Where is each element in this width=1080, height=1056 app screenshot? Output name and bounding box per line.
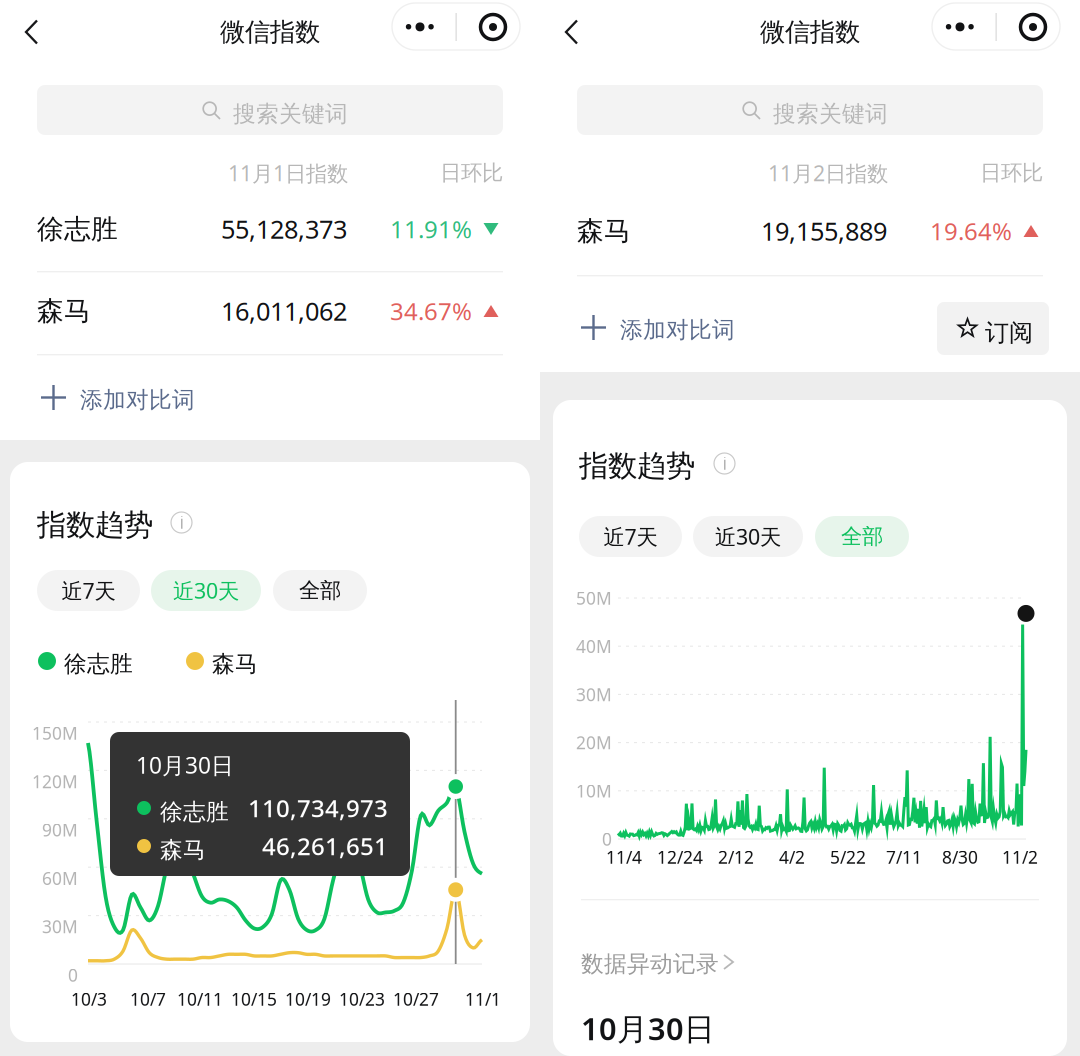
staticText: 森马 — [212, 650, 258, 678]
staticText: 日环比 — [440, 160, 503, 186]
staticText: 60M — [42, 867, 78, 890]
staticText: 订阅 — [985, 318, 1033, 347]
button[interactable]: Back — [5, 3, 57, 61]
staticText: 搜索关键词 — [773, 100, 888, 128]
staticText: 微信指数 — [760, 16, 860, 47]
button[interactable]: 数据异动记录 — [581, 944, 761, 978]
staticText: 徐志胜 — [37, 213, 118, 245]
button[interactable]: 添加对比词 — [37, 366, 503, 428]
staticText: 16,011,062 — [221, 294, 347, 328]
staticText: 10M — [576, 779, 612, 802]
button[interactable]: 订阅 — [937, 302, 1049, 355]
staticText: 0 — [602, 827, 612, 850]
staticText: 19.64% — [930, 215, 1012, 247]
staticText: 森马 — [160, 836, 206, 864]
staticText: 5/22 — [830, 845, 866, 868]
staticText: 近7天 — [603, 522, 657, 551]
staticText: 10月30日 — [581, 1008, 715, 1049]
staticText: 12/24 — [657, 845, 703, 868]
staticText: 110,734,973 — [248, 792, 388, 824]
button[interactable]: 近30天 — [151, 570, 261, 611]
staticText: 55,128,373 — [221, 212, 347, 246]
button[interactable]: 全部 — [273, 570, 367, 611]
staticText: 2/12 — [718, 845, 754, 868]
staticText: 7/11 — [886, 845, 922, 868]
staticText: 徐志胜 — [160, 798, 229, 826]
staticText: 10/19 — [285, 987, 331, 1010]
staticText: 19,155,889 — [761, 214, 887, 248]
staticText: 近30天 — [173, 576, 239, 605]
button[interactable]: 搜索关键词 — [577, 85, 1043, 135]
staticText: 徐志胜 — [64, 650, 133, 678]
staticText: 10/27 — [393, 987, 439, 1010]
staticText: 46,261,651 — [262, 830, 388, 862]
staticText: 日环比 — [980, 160, 1043, 186]
staticText: 10/7 — [130, 987, 166, 1010]
staticText: 森马 — [37, 295, 91, 327]
staticText: 90M — [42, 818, 78, 841]
staticText: 30M — [576, 683, 612, 706]
staticText: 10月30日 — [136, 750, 234, 780]
staticText: 10/3 — [71, 987, 107, 1010]
staticText: 11月2日指数 — [768, 159, 888, 187]
staticText: 30M — [42, 915, 78, 938]
staticText: 34.67% — [390, 295, 472, 327]
button[interactable]: More — [392, 3, 520, 50]
staticText: 全部 — [299, 577, 341, 604]
staticText: 150M — [32, 721, 78, 744]
button[interactable]: 近7天 — [579, 516, 682, 557]
staticText: 11/4 — [606, 845, 642, 868]
staticText: 指数趋势 — [37, 507, 153, 543]
staticText: 0 — [68, 963, 78, 986]
staticText: 10/23 — [339, 987, 385, 1010]
staticText: 近7天 — [61, 576, 115, 605]
staticText: 120M — [32, 770, 78, 793]
staticText: 40M — [576, 635, 612, 658]
button[interactable]: 添加对比词 — [577, 296, 837, 358]
staticText: 50M — [576, 586, 612, 609]
staticText: 10/15 — [231, 987, 277, 1010]
staticText: 20M — [576, 731, 612, 754]
staticText: 添加对比词 — [620, 316, 735, 344]
button[interactable]: 搜索关键词 — [37, 85, 503, 135]
staticText: 8/30 — [942, 845, 978, 868]
button[interactable]: Back — [545, 3, 597, 61]
staticText: 添加对比词 — [80, 386, 195, 414]
staticText: 数据异动记录 — [581, 950, 719, 978]
staticText: 10/11 — [177, 987, 223, 1010]
staticText: 4/2 — [779, 845, 805, 868]
button[interactable]: More — [932, 3, 1060, 50]
staticText: 微信指数 — [220, 16, 320, 47]
staticText: i — [179, 510, 183, 533]
staticText: 11/1 — [465, 987, 501, 1010]
staticText: 11.91% — [390, 213, 472, 245]
staticText: 11月1日指数 — [228, 159, 348, 187]
staticText: 11/2 — [1002, 845, 1038, 868]
button[interactable]: 近30天 — [693, 516, 803, 557]
staticText: 搜索关键词 — [233, 100, 348, 128]
staticText: 指数趋势 — [579, 448, 695, 484]
button[interactable]: 近7天 — [37, 570, 140, 611]
staticText: 近30天 — [715, 522, 781, 551]
staticText: 森马 — [577, 215, 631, 247]
button[interactable]: 全部 — [815, 516, 909, 557]
staticText: i — [722, 451, 726, 474]
staticText: 全部 — [841, 523, 883, 550]
